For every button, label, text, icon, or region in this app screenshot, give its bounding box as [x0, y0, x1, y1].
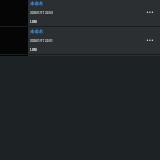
button[interactable]: More options: [132, 0, 160, 28]
button[interactable]: 未命名: [0, 0, 160, 28]
button[interactable]: More options: [132, 28, 160, 56]
staticText: 未命名: [30, 1, 44, 7]
staticText: 1.8M: [30, 20, 37, 24]
button[interactable]: 未命名: [0, 28, 160, 56]
staticText: 1.8M: [30, 48, 37, 52]
staticText: 2026/1/17 22:53: [30, 11, 53, 15]
staticText: 未命名: [30, 29, 44, 35]
staticText: 2026/1/17 22:51: [30, 39, 53, 43]
